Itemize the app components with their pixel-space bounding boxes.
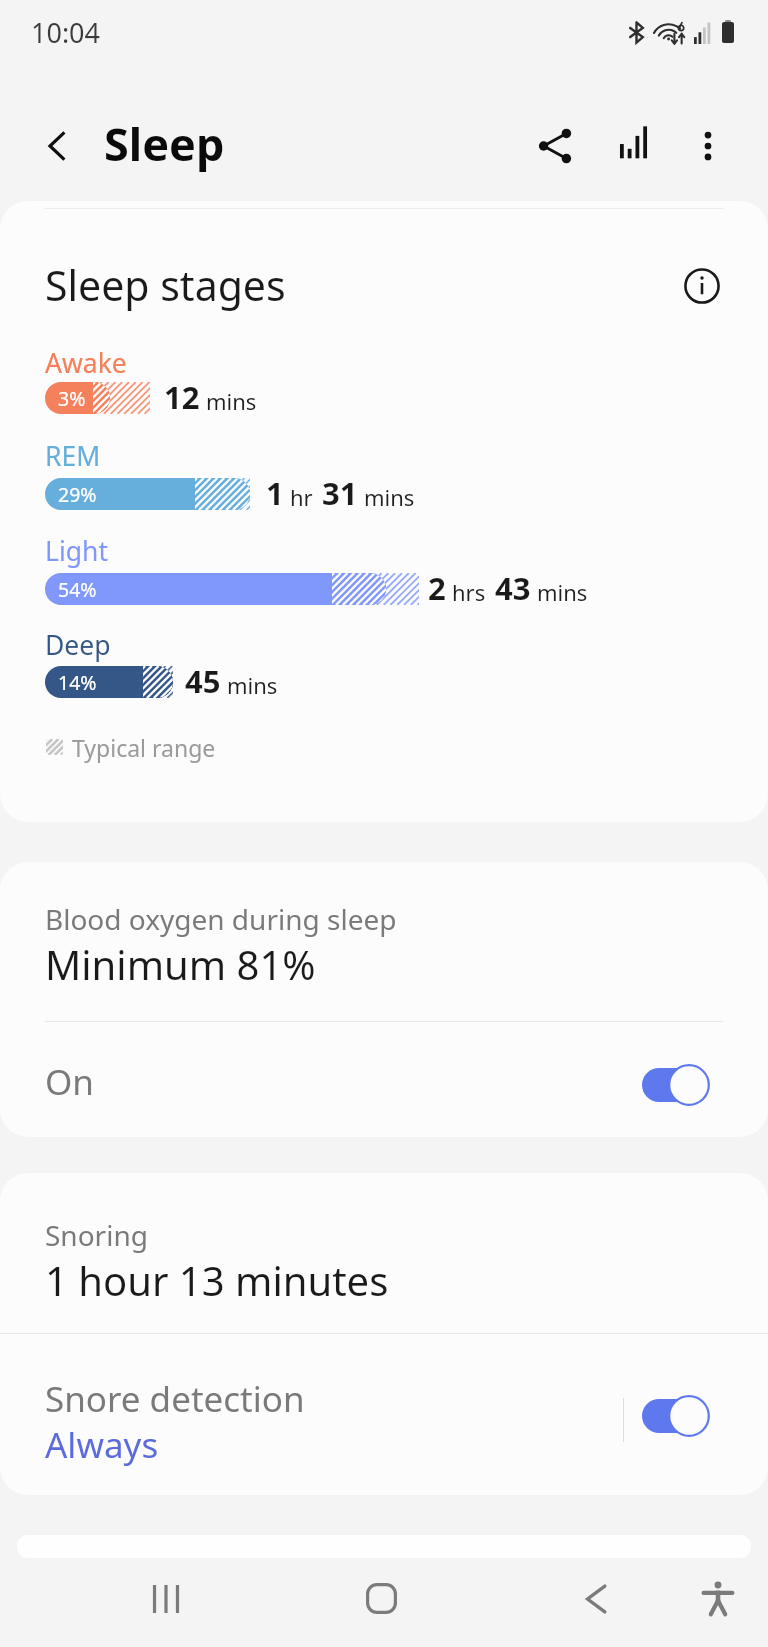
staticText: Awake [45,345,127,381]
staticText: Snoring [45,1216,148,1254]
staticText: 1 hour 13 minutes [45,1253,389,1307]
staticText: mins [227,670,278,700]
staticText: hrs [452,577,486,607]
button[interactable]: Back [30,118,86,174]
staticText: REM [45,438,101,474]
staticText: Always [45,1421,159,1469]
staticText: mins [206,386,257,416]
staticText: Blood oxygen during sleep [45,900,397,938]
staticText: Sleep stages [45,257,286,313]
staticText: 10:04 [31,14,101,51]
staticText: 14% [58,669,97,696]
button[interactable]: Information [674,258,730,314]
staticText: Snore detection [45,1375,305,1423]
staticText: 43 [495,567,531,609]
staticText: mins [537,577,588,607]
button[interactable]: On [0,1022,768,1132]
staticText: Minimum 81% [45,937,316,991]
button[interactable]: Trends [606,114,662,170]
staticText: 54% [58,576,97,603]
staticText: Light [45,533,108,569]
button[interactable]: Back [561,1564,631,1634]
staticText: 2 [428,567,446,609]
staticText: 1 [266,472,284,514]
button[interactable]: Snore detection [0,1334,768,1486]
staticText: 29% [58,481,97,508]
staticText: 31 [322,472,358,514]
staticText: On [45,1058,94,1106]
button[interactable]: Home [346,1563,416,1633]
staticText: Sleep [104,113,225,174]
staticText: hr [290,482,313,512]
staticText: 12 [164,376,200,418]
button[interactable]: Accessibility [683,1563,753,1633]
staticText: Typical range [72,732,216,763]
staticText: 45 [185,660,221,702]
button[interactable]: Share [527,118,583,174]
staticText: 3% [58,385,86,412]
staticText: mins [364,482,415,512]
button[interactable]: More options [680,118,736,174]
staticText: Deep [45,627,111,663]
button[interactable]: Recent apps [131,1564,201,1634]
